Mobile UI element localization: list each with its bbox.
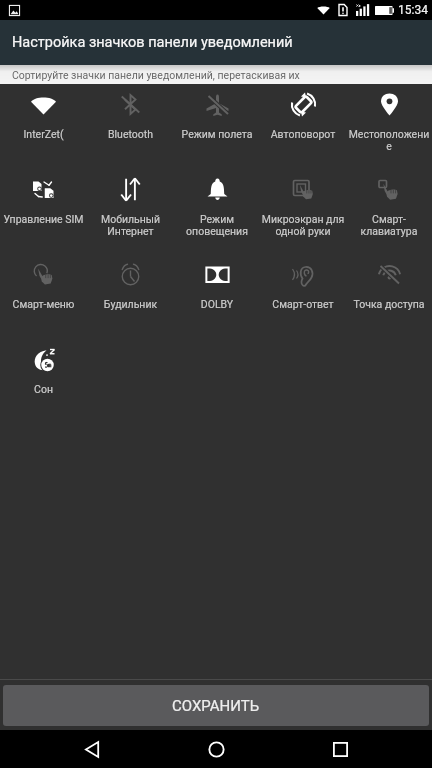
button[interactable]: Сон [0, 339, 87, 395]
button[interactable]: InterZet( [0, 84, 87, 140]
button[interactable]: DOLBY [174, 254, 260, 310]
staticText: Мобильный Интернет [88, 213, 173, 237]
button[interactable]: Режим полета [174, 84, 260, 140]
staticText: СОХРАНИТЬ [172, 697, 260, 715]
staticText: Смарт-ответ [261, 298, 345, 310]
staticText: Смарт-меню [1, 298, 86, 310]
staticText: Смарт-клавиатура [347, 213, 431, 237]
staticText: 15:34 [398, 3, 428, 17]
staticText: Управление SIM [1, 213, 86, 225]
staticText: Точка доступа [347, 298, 431, 310]
staticText: Режим полета [175, 128, 259, 140]
staticText: Автоповорот [261, 128, 345, 140]
staticText: DOLBY [175, 298, 259, 310]
staticText: Сортируйте значки панели уведомлений, пе… [12, 69, 300, 81]
button[interactable]: Смарт-меню [0, 254, 87, 310]
staticText: Режим оповещения [175, 213, 259, 237]
staticText: Bluetooth [88, 128, 173, 140]
button[interactable]: Мобильный Интернет [87, 169, 174, 237]
button[interactable]: Back [20, 730, 164, 768]
button[interactable]: Режим оповещения [174, 169, 260, 237]
button[interactable]: Микроэкран для одной руки [260, 169, 346, 237]
button[interactable]: Смарт-клавиатура [346, 169, 432, 237]
button[interactable]: Управление SIM [0, 169, 87, 225]
staticText: Сон [1, 383, 86, 395]
button[interactable]: Будильник [87, 254, 174, 310]
staticText: Микроэкран для одной руки [261, 213, 345, 237]
button[interactable]: Home [144, 730, 288, 768]
button[interactable]: Смарт-ответ [260, 254, 346, 310]
button[interactable]: Bluetooth [87, 84, 174, 140]
button[interactable]: СОХРАНИТЬ [3, 685, 429, 726]
staticText: Будильник [88, 298, 173, 310]
button[interactable]: Автоповорот [260, 84, 346, 140]
staticText: Местоположение [347, 128, 431, 152]
staticText: Настройка значков панели уведомлений [12, 34, 293, 51]
button[interactable]: Местоположение [346, 84, 432, 152]
button[interactable]: Точка доступа [346, 254, 432, 310]
button[interactable]: Recents [268, 730, 412, 768]
staticText: InterZet( [1, 128, 86, 140]
